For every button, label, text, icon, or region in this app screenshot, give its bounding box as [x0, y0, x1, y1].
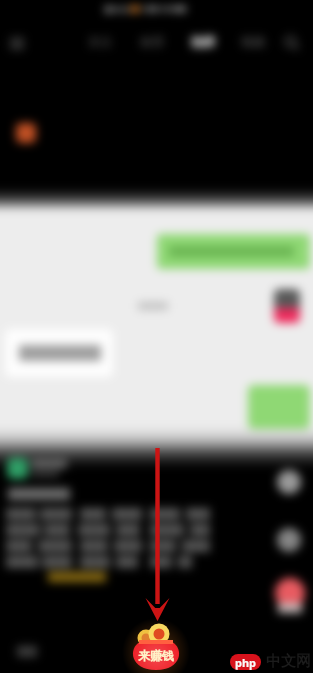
staticText: 关注: [88, 34, 112, 49]
button[interactable]: 推荐: [140, 34, 164, 49]
button[interactable]: 关注: [88, 34, 112, 49]
staticText: 视频: [241, 34, 265, 49]
button[interactable]: Earn money: [126, 618, 186, 673]
staticText: 推荐: [140, 34, 164, 49]
button[interactable]: Share: [277, 528, 301, 552]
button[interactable]: Menu: [9, 35, 25, 51]
staticText: 中文网: [266, 652, 311, 671]
button[interactable]: Search: [284, 35, 300, 51]
button[interactable]: 视频: [241, 34, 265, 49]
staticText: 来赚钱: [138, 648, 174, 663]
button[interactable]: Record: [275, 578, 305, 608]
staticText: php: [235, 655, 257, 670]
button[interactable]: Comment: [277, 470, 301, 494]
staticText: 热榜: [191, 34, 215, 49]
button[interactable]: 热榜: [191, 34, 215, 49]
